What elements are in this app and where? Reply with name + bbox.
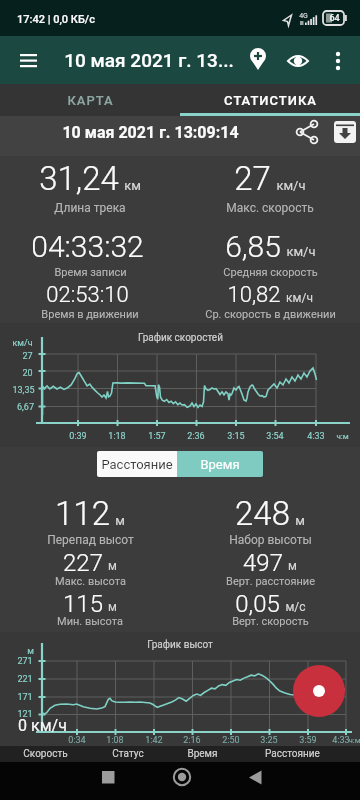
staticText: 497 [243,549,283,577]
button[interactable] [278,40,318,80]
staticText: Время в движении [41,308,139,321]
staticText: 121 [17,709,33,720]
staticText: Время [200,457,240,472]
staticText: 227 [63,549,103,577]
staticText: 10 мая 2021 г. 13:09:14 [62,123,239,142]
staticText: 02:53:10 [46,282,129,308]
staticText: Длина трека [54,201,126,215]
staticText: 271 [17,656,33,667]
staticText: 221 [17,674,33,685]
button[interactable]: КАРТА [0,84,180,116]
staticText: 3:54 [266,431,284,442]
staticText: ч:м [348,736,360,745]
staticText: 2:16 [183,735,201,746]
staticText: м/с [285,600,306,614]
staticText: 115 [63,590,103,618]
staticText: Набор высоты [229,533,312,547]
staticText: м [115,513,125,528]
staticText: 112 [55,494,110,533]
staticText: 2:36 [187,431,205,442]
button[interactable]: Расстояние [97,451,177,477]
button[interactable] [318,40,358,80]
staticText: 04:33:32 [31,229,144,264]
staticText: 1:08 [106,735,124,746]
button[interactable] [289,114,325,150]
staticText: 6,85 [225,229,281,264]
staticText: 3:59 [299,735,317,746]
staticText: 1:57 [148,431,166,442]
staticText: 27 [22,351,33,362]
button[interactable]: Время [177,451,263,477]
staticText: км [124,178,141,193]
staticText: Статус [112,748,144,760]
staticText: 10 мая 2021 г. 13... [64,49,234,71]
staticText: 3:25 [260,735,278,746]
staticText: График скоростей [138,332,223,344]
staticText: 171 [17,692,33,703]
staticText: График высот [147,639,213,651]
staticText: м [27,646,34,657]
staticText: Скорость [23,748,68,760]
staticText: Верт. скорость [232,615,309,628]
button[interactable] [293,665,345,717]
staticText: ч:м [336,432,349,441]
staticText: 27 [234,159,271,198]
button[interactable] [0,36,56,84]
staticText: 4:33 [307,431,325,442]
staticText: Перепад высот [47,533,134,547]
staticText: Верт. расстояние [226,575,315,588]
button[interactable] [80,762,136,800]
staticText: м [295,513,305,528]
staticText: км/ч [12,338,33,349]
staticText: м [108,559,117,573]
button[interactable] [327,114,360,150]
staticText: 0:34 [68,735,86,746]
staticText: 2:50 [222,735,240,746]
staticText: Макс. скорость [226,201,314,215]
staticText: 0 км/ч [18,716,67,735]
staticText: 4:33 [332,735,350,746]
staticText: 0:39 [69,431,87,442]
staticText: 17:42 | 0,0 КБ/с [17,13,95,26]
button[interactable] [238,40,278,80]
staticText: Расстояние [101,457,173,472]
staticText: м [108,600,117,614]
staticText: КАРТА [67,93,114,108]
staticText: 248 [235,494,290,533]
staticText: 13,35 [12,385,35,396]
staticText: 64 [329,13,340,24]
staticText: 4G [299,12,308,20]
staticText: 6,67 [17,402,34,413]
staticText: Ср. скорость в движении [205,308,336,321]
staticText: 31,24 [39,159,119,198]
staticText: Время записи [54,266,127,279]
button[interactable]: СТАТИСТИКА [180,84,360,116]
staticText: км/ч [286,244,316,259]
staticText: км/ч [286,291,313,305]
button[interactable] [152,762,208,800]
staticText: 0,05 [235,590,280,618]
staticText: СТАТИСТИКА [224,93,317,108]
staticText: м [288,559,297,573]
staticText: 1:18 [108,431,126,442]
staticText: 1:42 [145,735,163,746]
staticText: Мин. высота [57,615,123,628]
staticText: км/ч [276,178,306,193]
staticText: Время [187,748,218,760]
button[interactable] [226,762,282,800]
staticText: Средняя скорость [223,266,318,279]
staticText: 10,82 [227,282,281,308]
staticText: 20 [22,368,33,379]
staticText: 3:15 [227,431,245,442]
staticText: Макс. высота [55,575,126,588]
staticText: Расстояние [265,748,320,760]
